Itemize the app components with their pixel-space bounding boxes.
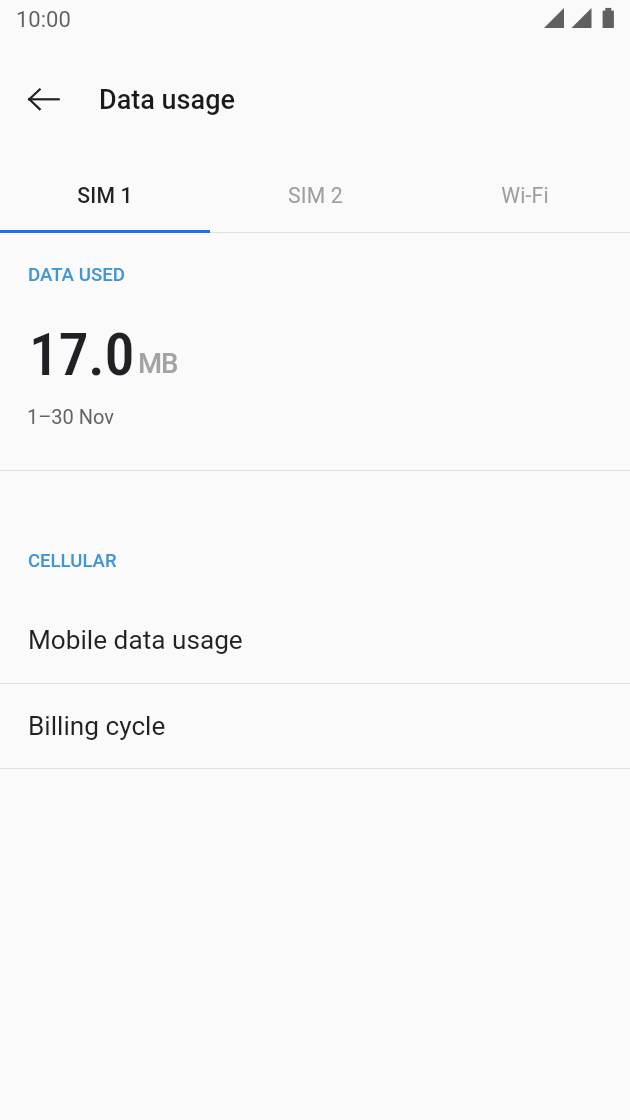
staticText: Data usage [99, 84, 235, 116]
staticText: 17.0 [29, 319, 135, 389]
staticText: SIM 2 [288, 183, 343, 208]
staticText: DATA USED [28, 264, 125, 286]
staticText: Wi-Fi [501, 183, 549, 208]
staticText: Billing cycle [28, 711, 166, 742]
button[interactable]: Billing cycle [0, 684, 630, 769]
staticText: MB [138, 347, 178, 379]
button[interactable]: Navigate up [20, 75, 68, 123]
staticText: CELLULAR [28, 550, 117, 572]
staticText: SIM 1 [77, 183, 133, 208]
button[interactable]: Wi-Fi [420, 160, 630, 230]
staticText: 10:00 [16, 7, 71, 33]
staticText: Mobile data usage [28, 625, 243, 656]
button[interactable]: Mobile data usage [0, 598, 630, 683]
button[interactable]: SIM 2 [210, 160, 420, 230]
button[interactable]: SIM 1 [0, 160, 210, 230]
staticText: 1–30 Nov [27, 405, 115, 428]
